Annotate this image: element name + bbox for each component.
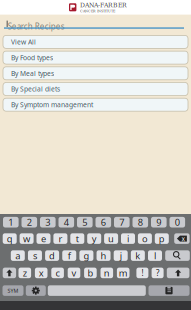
staticText: r <box>58 232 62 245</box>
staticText: ? <box>156 268 159 278</box>
staticText: y <box>92 232 97 245</box>
staticText: h <box>100 249 106 262</box>
button[interactable]: y <box>87 233 101 244</box>
button[interactable]: View All <box>3 35 188 48</box>
button[interactable]: q <box>3 233 17 244</box>
button[interactable]: Backspace <box>174 233 190 244</box>
staticText: c <box>56 267 60 279</box>
button[interactable]: 9 <box>151 217 167 227</box>
staticText: CANCER INSTITUTE <box>80 9 115 13</box>
button[interactable]: ! <box>136 268 148 278</box>
staticText: By Special diets <box>11 85 60 93</box>
button[interactable]: s <box>28 250 42 261</box>
staticText: 5 <box>82 216 87 228</box>
staticText: d <box>49 249 55 262</box>
button[interactable]: 6 <box>95 217 111 227</box>
staticText: q <box>7 232 13 245</box>
button[interactable]: By Food types <box>3 51 188 64</box>
button[interactable]: Shift <box>167 268 189 278</box>
staticText: t <box>76 232 79 245</box>
staticText: n <box>104 267 110 279</box>
button[interactable]: By Symptom management <box>3 98 188 111</box>
button[interactable]: 7 <box>114 217 130 227</box>
staticText: l <box>154 249 156 262</box>
button[interactable]: x <box>35 268 47 278</box>
staticText: 9 <box>156 216 161 228</box>
button[interactable]: w <box>20 233 34 244</box>
staticText: u <box>108 232 114 245</box>
staticText: 8 <box>138 216 143 228</box>
staticText: j <box>120 249 122 262</box>
button[interactable]: 8 <box>132 217 148 227</box>
button[interactable]: ? <box>152 268 164 278</box>
button[interactable]: 0 <box>169 217 185 227</box>
button[interactable]: l <box>148 250 162 261</box>
staticText: z <box>23 267 27 279</box>
button[interactable]: b <box>84 268 97 278</box>
staticText: By Symptom management <box>11 100 93 109</box>
button[interactable]: p <box>155 233 169 244</box>
staticText: m <box>119 267 128 279</box>
button[interactable]: m <box>117 268 129 278</box>
button[interactable]: a <box>11 250 25 261</box>
staticText: o <box>142 232 148 245</box>
button[interactable]: t <box>70 233 84 244</box>
staticText: x <box>39 267 44 279</box>
button[interactable]: u <box>104 233 118 244</box>
staticText: 1 <box>8 216 13 228</box>
button[interactable]: j <box>114 250 128 261</box>
staticText: Search Recipes <box>8 21 65 32</box>
button[interactable]: By Special diets <box>3 82 188 95</box>
button[interactable]: g <box>79 250 93 261</box>
staticText: i <box>127 232 129 245</box>
button[interactable]: c <box>51 268 64 278</box>
staticText: 7 <box>119 216 124 228</box>
button[interactable]: 4 <box>58 217 74 227</box>
button[interactable]: i <box>121 233 135 244</box>
button[interactable]: h <box>96 250 110 261</box>
button[interactable]: Symbols <box>2 285 23 296</box>
button[interactable]: Shift <box>3 268 16 278</box>
staticText: By Food types <box>11 53 53 62</box>
staticText: f <box>68 249 71 262</box>
button[interactable]: r <box>53 233 67 244</box>
staticText: DANA-FARBER <box>80 2 127 9</box>
staticText: By Meal types <box>11 69 54 78</box>
button[interactable]: 2 <box>21 217 37 227</box>
staticText: w <box>23 232 30 245</box>
button[interactable]: Done <box>148 285 189 296</box>
staticText: b <box>87 267 93 279</box>
button[interactable]: n <box>100 268 113 278</box>
staticText: v <box>71 267 76 279</box>
button[interactable]: o <box>138 233 152 244</box>
staticText: p <box>159 232 165 245</box>
staticText: 6 <box>101 216 106 228</box>
button[interactable]: Search <box>165 250 190 261</box>
staticText: e <box>41 232 46 245</box>
staticText: g <box>83 249 89 262</box>
staticText: 3 <box>45 216 50 228</box>
button[interactable]: 1 <box>3 217 19 227</box>
staticText: View All <box>11 37 36 46</box>
button[interactable]: Space <box>48 285 146 296</box>
button[interactable]: k <box>131 250 145 261</box>
button[interactable]: 3 <box>40 217 56 227</box>
button[interactable]: 5 <box>77 217 93 227</box>
button[interactable]: e <box>36 233 50 244</box>
staticText: 4 <box>64 216 69 228</box>
button[interactable]: f <box>62 250 76 261</box>
staticText: 2 <box>27 216 32 228</box>
staticText: ! <box>141 268 143 278</box>
staticText: s <box>33 249 37 262</box>
staticText: a <box>15 249 20 262</box>
button[interactable]: z <box>18 268 31 278</box>
button[interactable]: By Meal types <box>3 67 188 80</box>
button[interactable]: Keyboard settings <box>26 285 46 296</box>
staticText: 0 <box>175 216 180 228</box>
staticText: k <box>135 249 140 262</box>
staticText: x <box>181 234 185 243</box>
staticText: SYM <box>7 287 18 294</box>
button[interactable]: d <box>45 250 59 261</box>
button[interactable]: v <box>68 268 80 278</box>
